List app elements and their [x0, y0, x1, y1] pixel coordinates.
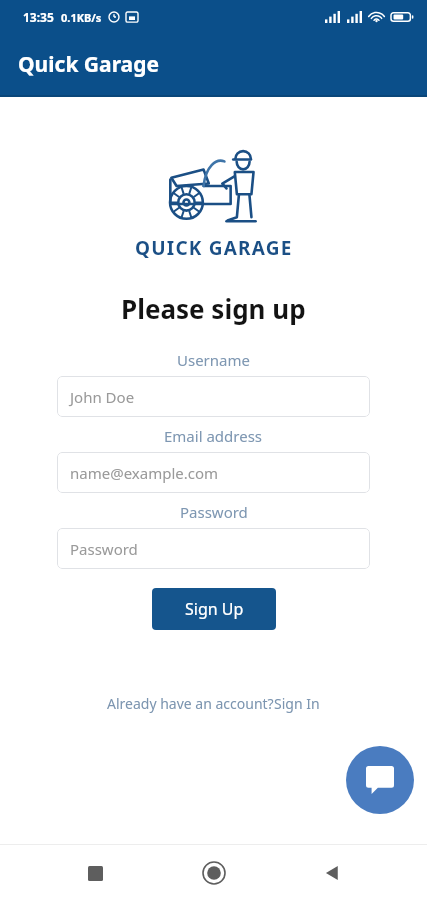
staticText: Email address — [164, 426, 263, 446]
button[interactable]: Back — [308, 849, 356, 897]
staticText: Password — [180, 502, 248, 522]
staticText: name@example.com — [70, 463, 219, 483]
staticText: Sign In — [274, 694, 320, 713]
staticText: Already have an account? — [107, 694, 274, 713]
button[interactable]: John Doe — [57, 376, 370, 417]
staticText: Quick Garage — [18, 50, 159, 79]
staticText: Password — [70, 539, 138, 559]
staticText: Username — [177, 350, 250, 370]
staticText: Sign Up — [185, 598, 244, 620]
staticText: QUICK GARAGE — [135, 235, 293, 261]
button[interactable]: Recents — [71, 849, 119, 897]
button[interactable]: Sign In — [274, 694, 320, 713]
staticText: John Doe — [70, 387, 135, 407]
staticText: 0.1KB/s — [61, 10, 102, 25]
button[interactable]: name@example.com — [57, 452, 370, 493]
staticText: Please sign up — [121, 291, 306, 326]
button[interactable]: Chat — [346, 746, 414, 814]
button[interactable]: Password — [57, 528, 370, 569]
button[interactable]: Sign Up — [152, 588, 276, 630]
staticText: 13:35 — [23, 9, 54, 25]
button[interactable]: Home — [190, 849, 238, 897]
